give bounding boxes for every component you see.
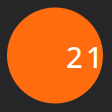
staticText: 21 — [66, 37, 103, 76]
button[interactable]: 21 — [7, 7, 103, 103]
